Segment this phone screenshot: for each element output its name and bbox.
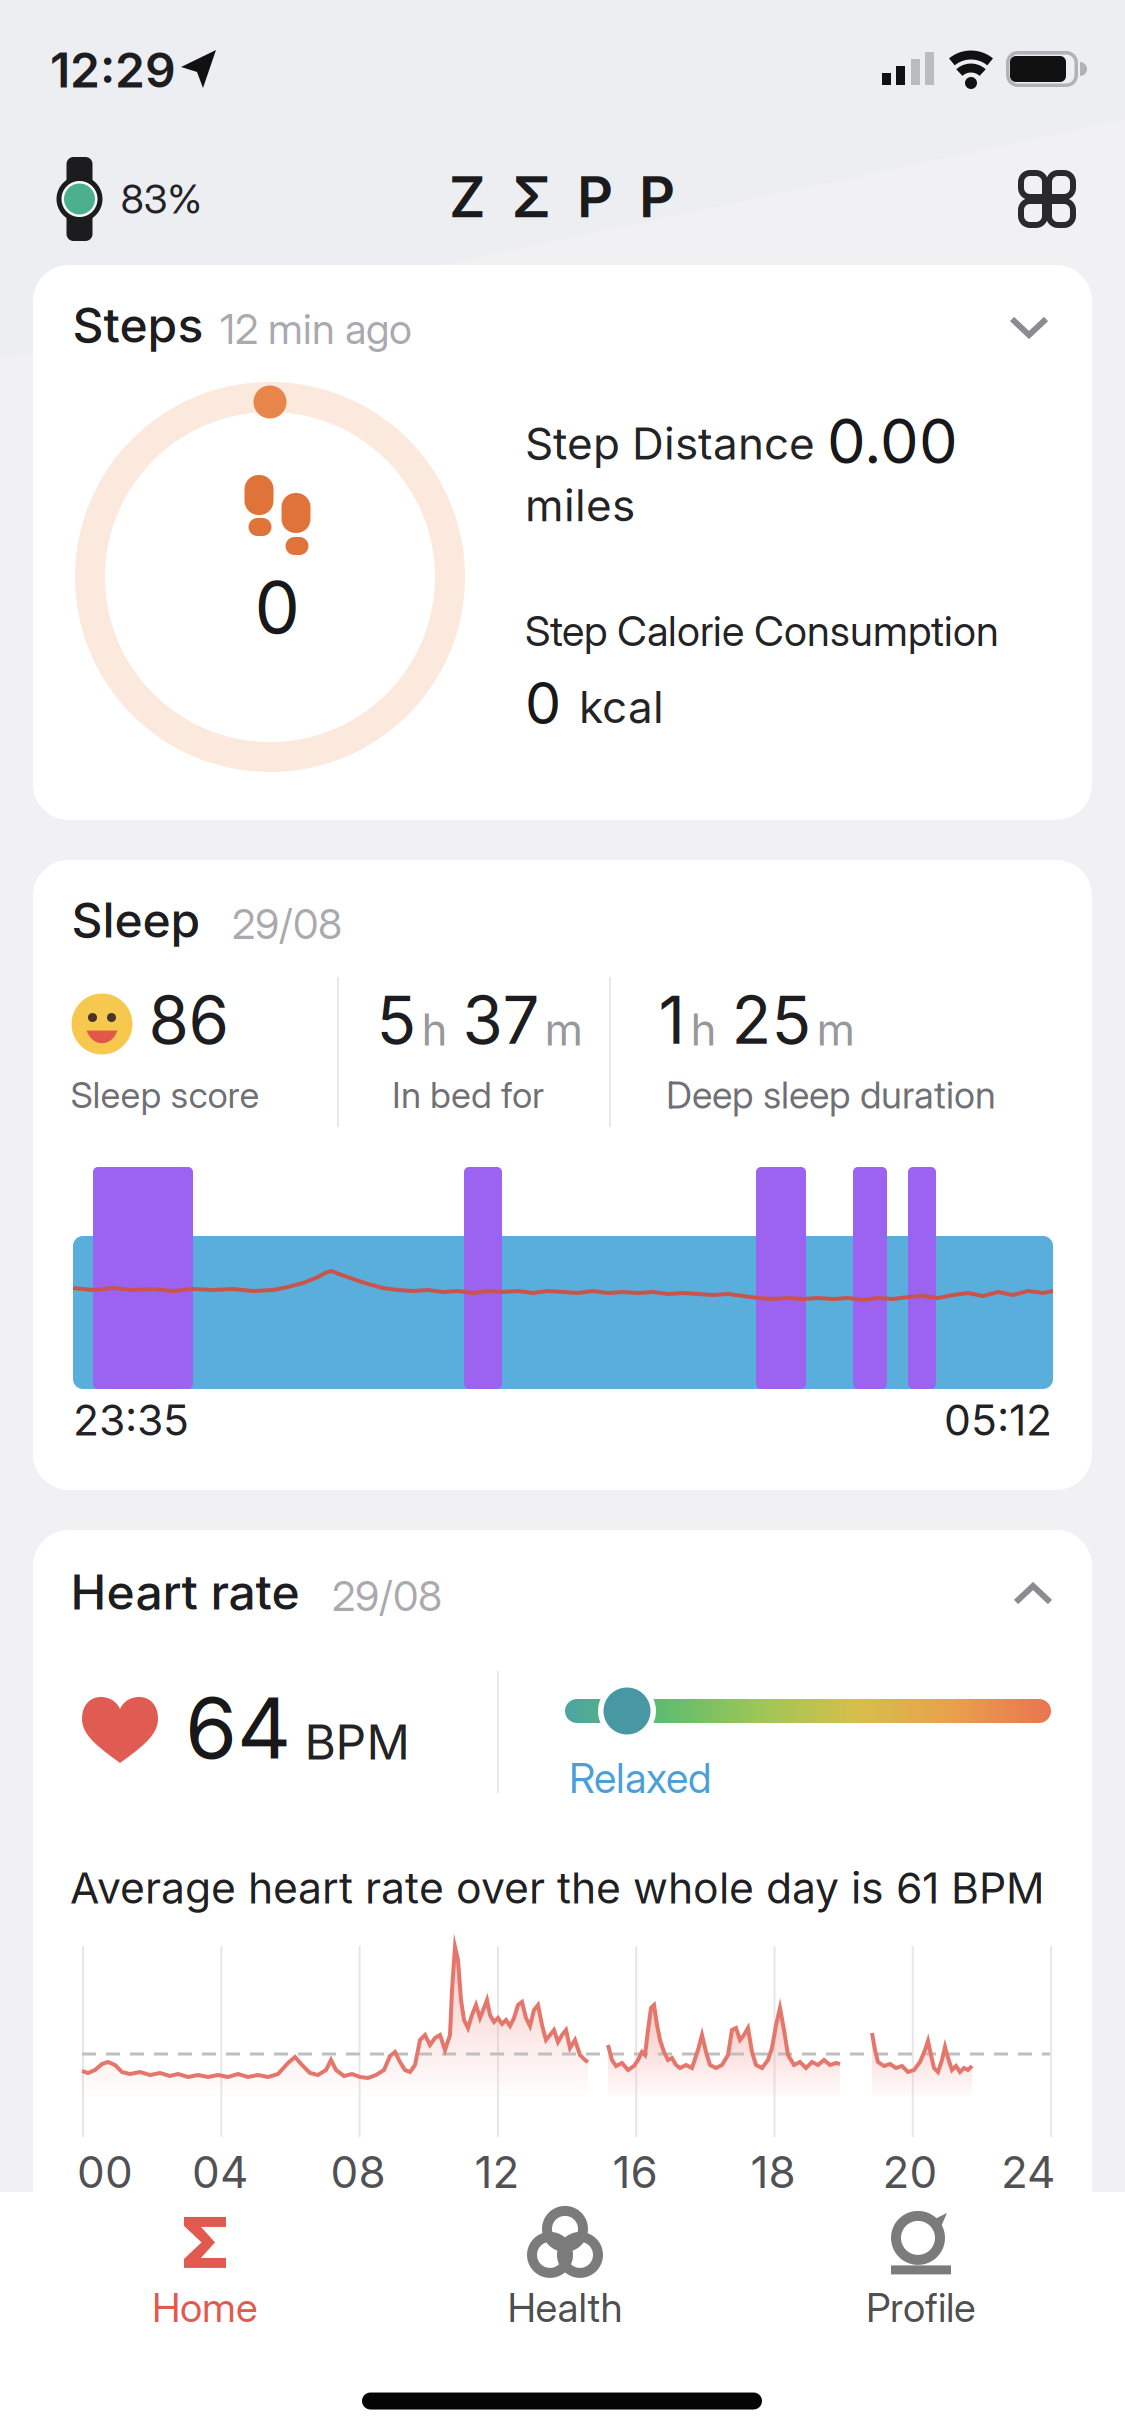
staticText: 5 bbox=[376, 981, 416, 1059]
staticText: 83% bbox=[120, 175, 201, 223]
staticText: 20 bbox=[882, 2146, 937, 2198]
staticText: Step Calorie Consumption bbox=[525, 607, 999, 655]
staticText: 12 bbox=[474, 2146, 519, 2198]
button[interactable]: Sleep bbox=[33, 860, 1092, 1490]
staticText: 0 bbox=[254, 564, 299, 649]
button[interactable]: Steps bbox=[33, 265, 1092, 820]
staticText: 37 bbox=[462, 981, 539, 1059]
staticText: 24 bbox=[1001, 2146, 1055, 2198]
staticText: 12:29 bbox=[50, 42, 176, 98]
staticText: Heart rate bbox=[70, 1564, 299, 1620]
staticText: 00 bbox=[77, 2146, 133, 2198]
button[interactable]: Watch battery 83% bbox=[56, 156, 201, 242]
staticText: In bed for bbox=[392, 1074, 544, 1116]
button[interactable]: Apps bbox=[1018, 170, 1076, 228]
staticText: 05:12 bbox=[944, 1395, 1052, 1445]
button[interactable]: Collapse Heart rate bbox=[1005, 1574, 1061, 1614]
staticText: Sleep score bbox=[70, 1074, 259, 1116]
button[interactable]: Profile bbox=[866, 2213, 976, 2331]
staticText: Σ bbox=[512, 164, 551, 230]
staticText: 08 bbox=[330, 2146, 385, 2198]
button[interactable]: Heart rate bbox=[33, 1530, 1092, 2260]
staticText: P bbox=[639, 164, 675, 230]
staticText: 29/08 bbox=[332, 1572, 442, 1620]
staticText: Sleep bbox=[71, 892, 200, 948]
staticText: Health bbox=[507, 2284, 622, 2331]
staticText: miles bbox=[525, 479, 635, 531]
staticText: m bbox=[544, 1004, 583, 1055]
staticText: Profile bbox=[866, 2284, 976, 2331]
staticText: 04 bbox=[192, 2146, 248, 2198]
staticText: h bbox=[690, 1004, 716, 1055]
staticText: Relaxed bbox=[569, 1754, 711, 1802]
staticText: 29/08 bbox=[232, 900, 342, 948]
staticText: 12 min ago bbox=[220, 305, 412, 353]
staticText: Average heart rate over the whole day is… bbox=[70, 1863, 1045, 1913]
staticText: 16 bbox=[612, 2146, 657, 2198]
staticText: BPM bbox=[304, 1714, 409, 1770]
staticText: 1 bbox=[658, 981, 685, 1059]
staticText: Home bbox=[152, 2284, 258, 2331]
staticText: P bbox=[577, 164, 613, 230]
staticText: 25 bbox=[731, 981, 811, 1059]
staticText: Steps bbox=[72, 297, 203, 353]
staticText: Deep sleep duration bbox=[666, 1073, 996, 1117]
staticText: 18 bbox=[750, 2146, 795, 2198]
button[interactable]: Health bbox=[507, 2213, 622, 2331]
staticText: 23:35 bbox=[73, 1395, 189, 1445]
staticText: h bbox=[421, 1004, 447, 1055]
staticText: kcal bbox=[579, 681, 664, 733]
staticText: 64 bbox=[185, 1678, 291, 1778]
staticText: Step Distance bbox=[525, 417, 815, 469]
staticText: 0.00 bbox=[827, 405, 958, 477]
button[interactable]: Collapse Steps bbox=[1001, 307, 1057, 347]
staticText: 0 bbox=[525, 669, 561, 737]
staticText: Z bbox=[449, 164, 486, 230]
button[interactable]: Home bbox=[152, 2217, 258, 2331]
staticText: 86 bbox=[148, 981, 229, 1059]
staticText: m bbox=[816, 1004, 855, 1055]
